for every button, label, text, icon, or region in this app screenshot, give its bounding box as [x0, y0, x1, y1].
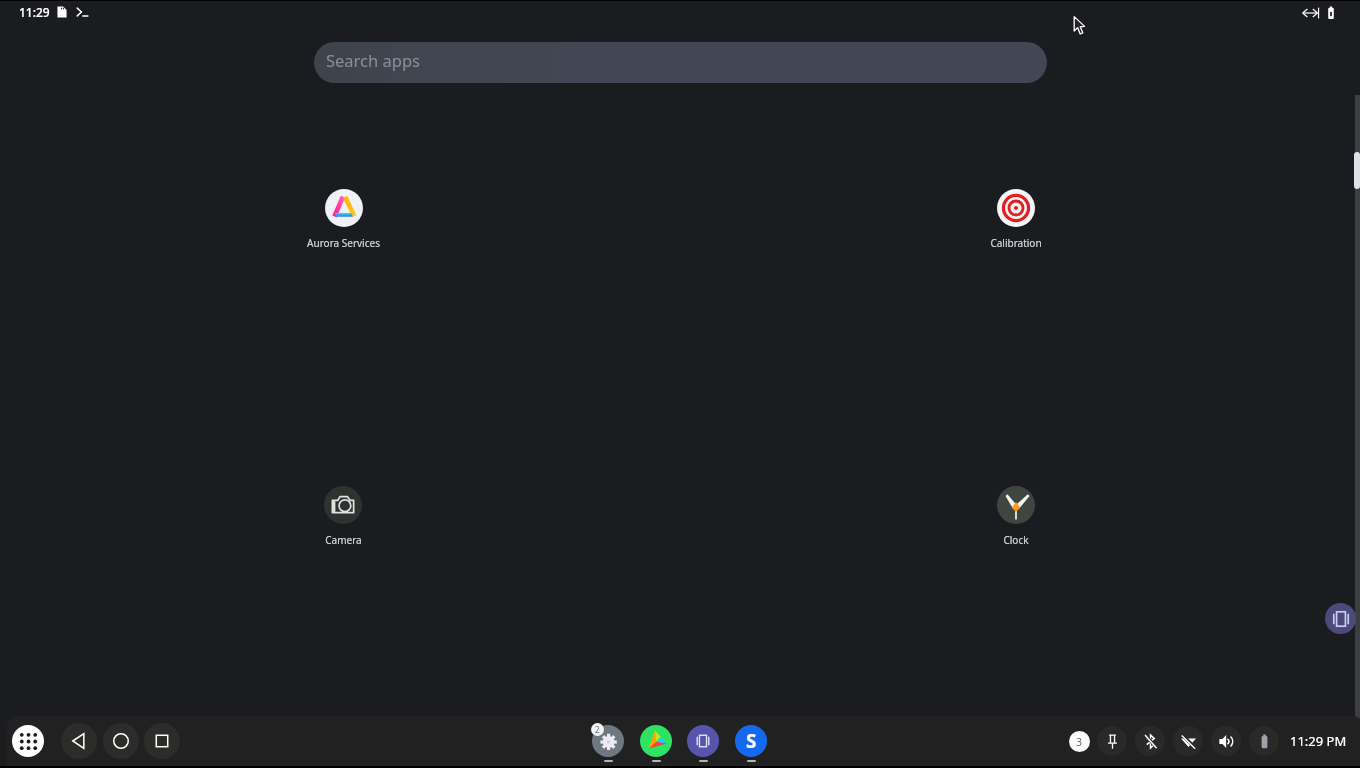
button[interactable]: Wifi off	[1173, 726, 1203, 756]
staticText: 3	[1076, 735, 1083, 749]
button[interactable]: Pin	[1097, 726, 1127, 756]
button[interactable]: Camera	[287, 486, 399, 560]
button[interactable]: Back	[61, 723, 97, 759]
staticText: Calibration	[990, 236, 1042, 250]
staticText: Search apps	[326, 49, 420, 71]
button[interactable]: Window mode	[1325, 603, 1356, 634]
button[interactable]: Aurora Services	[287, 189, 399, 263]
button[interactable]: Bluetooth off	[1135, 726, 1165, 756]
button[interactable]: Notifications	[1069, 731, 1090, 752]
button[interactable]: Search apps	[314, 42, 1047, 83]
button[interactable]: All apps	[12, 725, 44, 757]
staticText: Camera	[325, 533, 362, 547]
button[interactable]: Clock	[960, 486, 1072, 560]
button[interactable]: Battery	[1249, 726, 1279, 756]
button[interactable]: Skype	[735, 725, 767, 757]
button[interactable]: Calibration	[960, 189, 1072, 263]
button[interactable]: Home	[103, 723, 139, 759]
button[interactable]: 11:29 PM	[1284, 725, 1352, 757]
staticText: 2	[595, 724, 600, 735]
button[interactable]: Recents	[144, 723, 180, 759]
staticText: Clock	[1003, 533, 1029, 547]
staticText: 11:29	[19, 4, 50, 20]
staticText: 11:29 PM	[1290, 732, 1347, 750]
staticText: S	[746, 728, 757, 754]
button[interactable]: Volume	[1211, 726, 1241, 756]
button[interactable]: Settings	[592, 725, 624, 757]
button[interactable]: Files	[687, 725, 719, 757]
staticText: Aurora Services	[307, 236, 380, 250]
button[interactable]: Play Store	[640, 725, 672, 757]
